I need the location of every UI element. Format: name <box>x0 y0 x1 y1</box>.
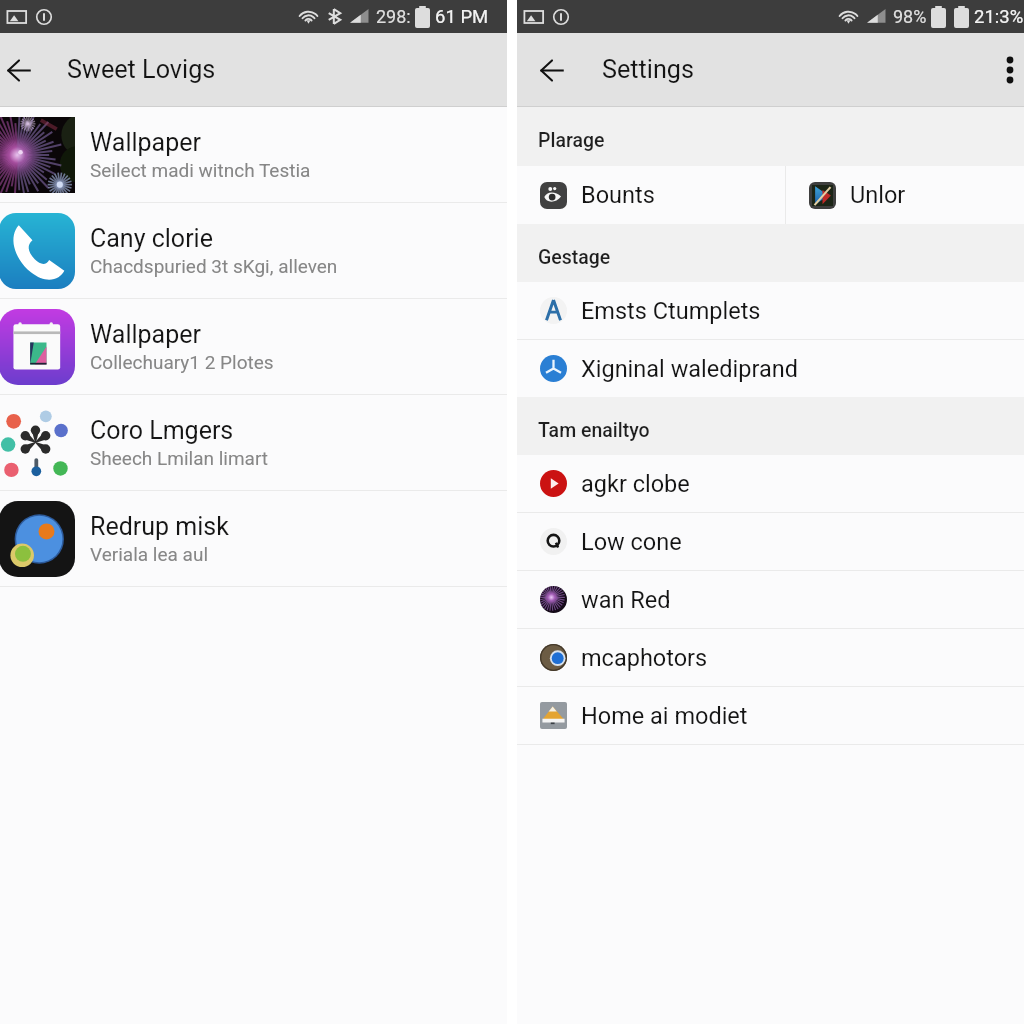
staticText: Tam enailtyo <box>538 419 650 442</box>
staticText: Wallpaper <box>90 320 201 349</box>
staticText: Emsts Ctumplets <box>581 297 761 325</box>
button[interactable]: Wallpaper <box>0 299 507 394</box>
staticText: Cany clorie <box>90 224 213 253</box>
staticText: Wallpaper <box>90 128 201 157</box>
button[interactable]: mcaphotors <box>517 629 1024 686</box>
staticText: agkr clobe <box>581 470 690 498</box>
staticText: Collechuary1 2 Plotes <box>90 351 274 373</box>
staticText: Gestage <box>538 246 611 269</box>
button[interactable]: More options <box>995 42 1024 98</box>
button[interactable]: Unlor <box>786 166 1024 224</box>
staticText: wan Red <box>581 586 671 614</box>
button[interactable]: agkr clobe <box>517 455 1024 512</box>
button[interactable]: Cany clorie <box>0 203 507 298</box>
button[interactable]: Low cone <box>517 513 1024 570</box>
staticText: 98% <box>893 6 927 27</box>
button[interactable]: Redrup misk <box>0 491 507 586</box>
button[interactable]: Bounts <box>517 166 785 224</box>
button[interactable]: Emsts Ctumplets <box>517 282 1024 339</box>
staticText: Coro Lmgers <box>90 416 234 445</box>
staticText: 61 PM <box>435 6 489 28</box>
staticText: mcaphotors <box>581 644 708 672</box>
button[interactable]: Wallpaper <box>0 107 507 202</box>
staticText: Sheech Lmilan limart <box>90 447 269 469</box>
staticText: Chacdspuried 3t sKgi, alleven <box>90 255 338 277</box>
staticText: Sweet Lovigs <box>67 55 216 85</box>
staticText: Settings <box>602 55 694 85</box>
button[interactable]: Xigninal walediprand <box>517 340 1024 397</box>
staticText: Seilect madi witnch Testia <box>90 159 311 181</box>
staticText: Plarage <box>538 129 605 152</box>
staticText: Low cone <box>581 528 682 556</box>
staticText: Unlor <box>850 181 906 209</box>
button[interactable]: Back <box>517 42 571 98</box>
button[interactable]: Coro Lmgers <box>0 395 507 490</box>
button[interactable]: wan Red <box>517 571 1024 628</box>
button[interactable]: Home ai modiet <box>517 687 1024 744</box>
staticText: Bounts <box>581 181 655 209</box>
staticText: Veriala lea aul <box>90 543 208 565</box>
button[interactable]: Back <box>0 42 38 98</box>
staticText: 21:3% <box>974 6 1024 28</box>
staticText: 298: <box>376 6 411 27</box>
staticText: Xigninal walediprand <box>581 355 798 383</box>
staticText: Redrup misk <box>90 512 229 541</box>
staticText: Home ai modiet <box>581 702 748 730</box>
